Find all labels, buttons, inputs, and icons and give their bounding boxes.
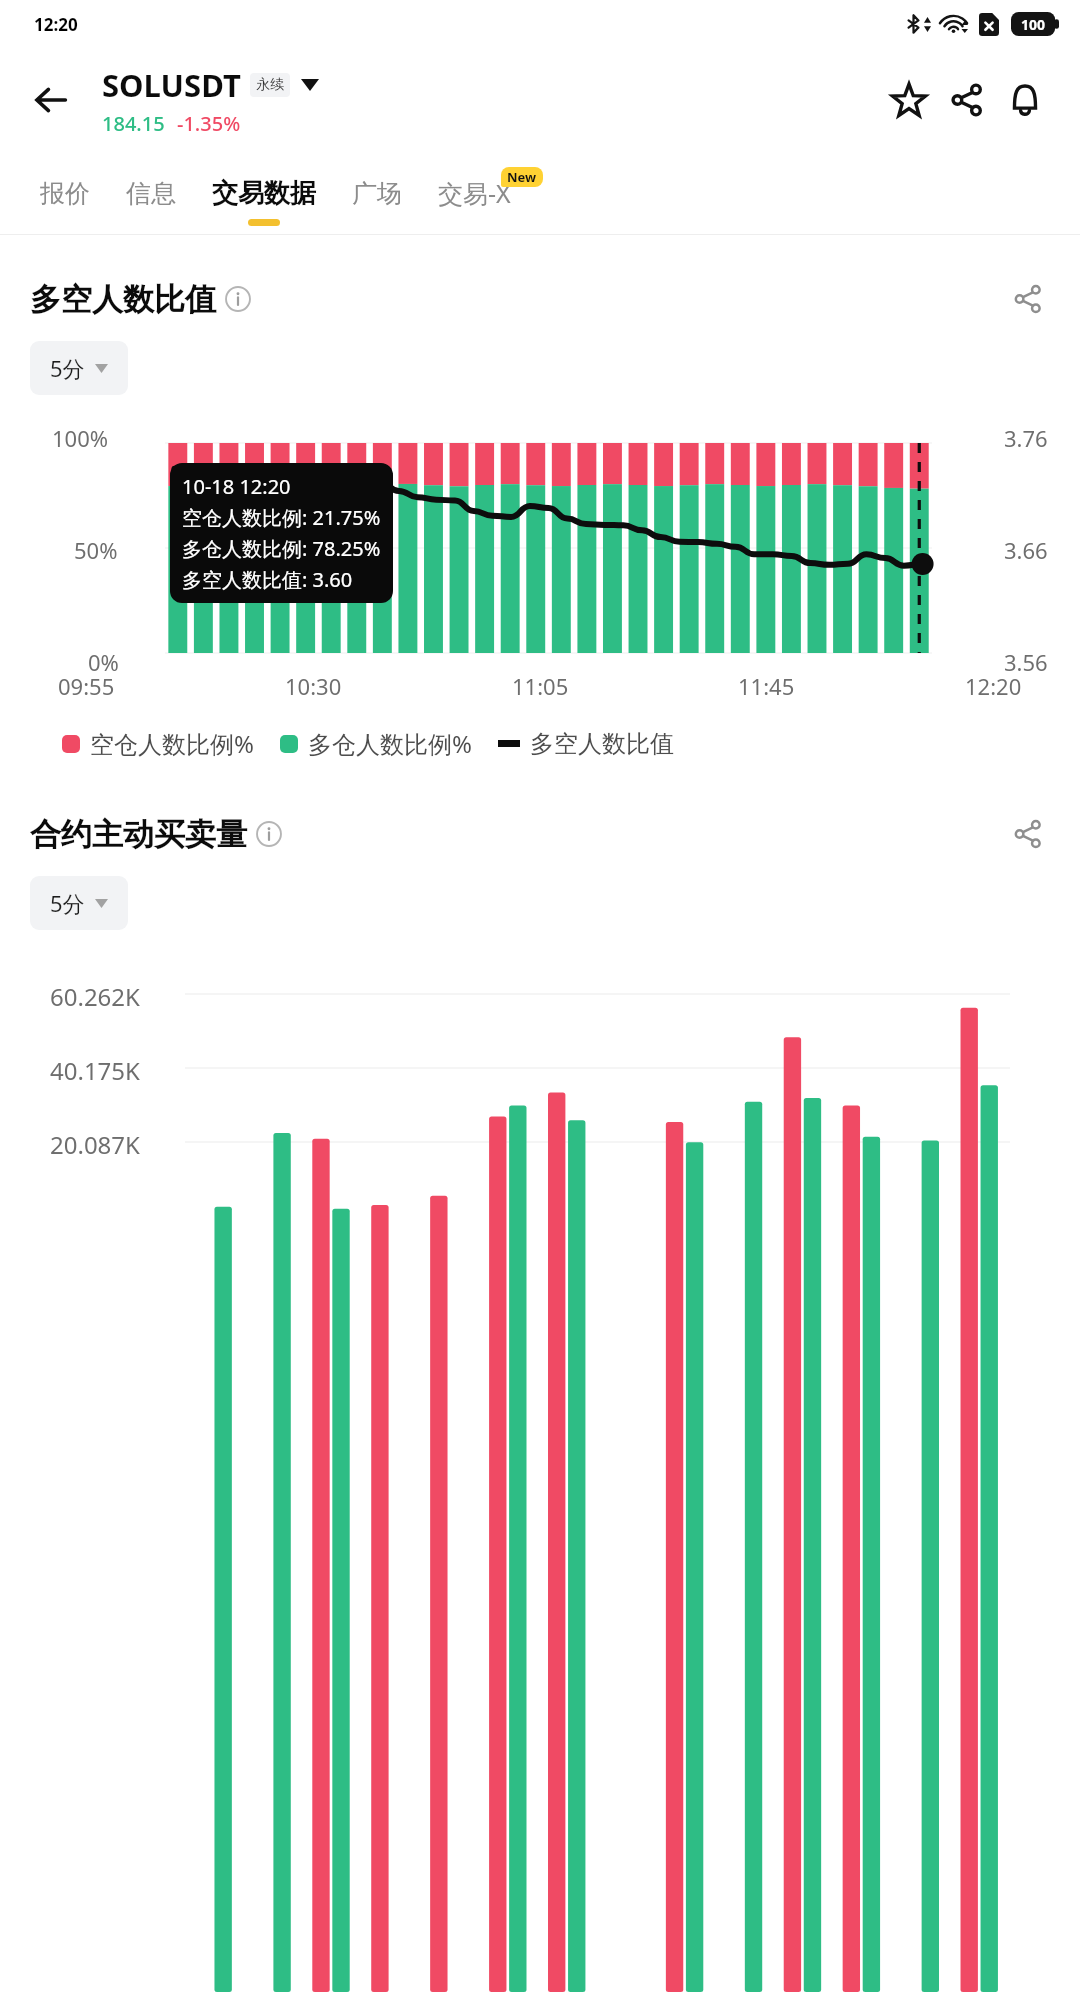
button[interactable]: 信息: [108, 152, 194, 234]
staticText: 11:05: [512, 671, 569, 701]
staticText: 多空人数比值: 3.60: [182, 566, 353, 593]
staticText: 5分: [50, 888, 85, 918]
staticText: 交易数据: [212, 177, 316, 210]
button[interactable]: 5分: [30, 341, 128, 395]
staticText: 信息: [126, 178, 176, 209]
staticText: 50%: [74, 535, 118, 565]
button[interactable]: 5分: [30, 876, 128, 930]
button[interactable]: 广场: [334, 152, 420, 234]
staticText: -1.35%: [177, 110, 241, 137]
staticText: 60.262K: [50, 980, 140, 1013]
staticText: 40.175K: [50, 1054, 140, 1087]
staticText: 184.15: [102, 110, 165, 137]
staticText: 09:55: [58, 671, 115, 701]
staticText: 多空人数比值: [30, 280, 216, 319]
button[interactable]: Back: [22, 71, 80, 129]
button[interactable]: 交易-X: [420, 152, 571, 234]
staticText: 20.087K: [50, 1128, 140, 1161]
staticText: 报价: [40, 178, 90, 209]
staticText: 多仓人数比例%: [308, 727, 472, 760]
button[interactable]: Share: [938, 71, 996, 129]
staticText: 空仓人数比例%: [90, 727, 254, 760]
staticText: 3.66: [1004, 535, 1048, 565]
button[interactable]: Share chart: [1002, 273, 1054, 325]
staticText: 3.76: [1004, 423, 1048, 453]
staticText: 合约主动买卖量: [30, 815, 247, 854]
button[interactable]: 报价: [22, 152, 108, 234]
staticText: New: [507, 168, 537, 186]
staticText: 12:20: [965, 671, 1022, 701]
staticText: 交易-X: [438, 176, 511, 210]
staticText: 10:30: [285, 671, 342, 701]
button[interactable]: Share chart: [1002, 808, 1054, 860]
staticText: 100%: [52, 423, 109, 453]
button[interactable]: 交易数据: [194, 152, 334, 234]
staticText: 11:45: [738, 671, 795, 701]
button[interactable]: Favorite: [880, 71, 938, 129]
button[interactable]: Alerts: [996, 71, 1054, 129]
button[interactable]: Info: [255, 820, 283, 848]
button[interactable]: Info: [224, 285, 252, 313]
staticText: 多空人数比值: [530, 729, 674, 759]
staticText: 5分: [50, 353, 85, 383]
staticText: 空仓人数比例: 21.75%: [182, 504, 381, 531]
staticText: 12:20: [34, 13, 78, 36]
button[interactable]: Switch contract: [301, 79, 319, 91]
staticText: 3.56: [1004, 647, 1048, 677]
staticText: 多仓人数比例: 78.25%: [182, 535, 381, 562]
staticText: 永续: [256, 76, 284, 94]
staticText: SOLUSDT: [102, 64, 241, 106]
staticText: 10-18 12:20: [182, 473, 291, 500]
staticText: 0%: [88, 647, 119, 677]
staticText: 广场: [352, 178, 402, 209]
staticText: 100: [1021, 15, 1046, 34]
